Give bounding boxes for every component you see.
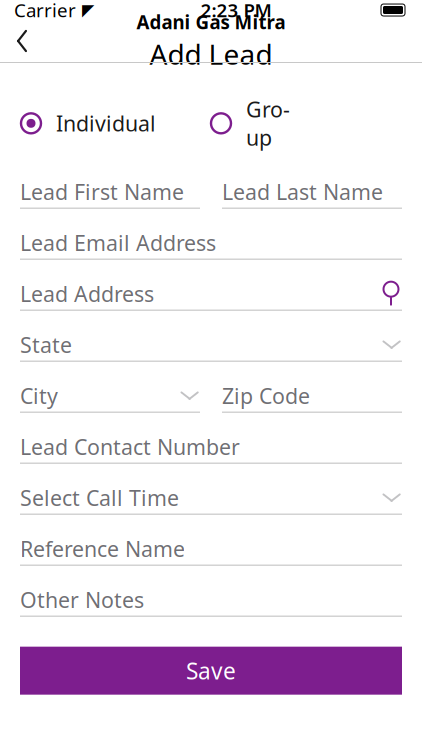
button[interactable]: Individual <box>20 103 210 143</box>
staticText: State <box>20 330 72 359</box>
staticText: Zip Code <box>222 381 310 410</box>
staticText: Lead Address <box>20 279 154 308</box>
button[interactable]: Save <box>20 647 402 695</box>
staticText: Individual <box>56 109 156 137</box>
staticText: 2:23 PM <box>200 0 271 22</box>
button[interactable]: Zip Code <box>222 380 402 413</box>
staticText: Save <box>186 656 236 686</box>
staticText: Add Lead <box>149 35 272 72</box>
staticText: Lead Contact Number <box>20 432 240 461</box>
staticText: Carrier <box>14 0 76 22</box>
button[interactable]: Lead Email Address <box>20 227 402 260</box>
staticText: Lead Last Name <box>222 177 383 206</box>
button[interactable]: Group <box>210 89 306 158</box>
staticText: Select Call Time <box>20 483 179 512</box>
button[interactable]: Reference Name <box>20 533 402 566</box>
button[interactable]: Other Notes <box>20 584 402 617</box>
staticText: Adani Gas Mitra <box>136 9 285 34</box>
staticText: Reference Name <box>20 534 185 563</box>
button[interactable]: City <box>20 380 200 413</box>
staticText: Lead First Name <box>20 177 184 206</box>
staticText: ◤ <box>82 1 94 19</box>
button[interactable]: Back <box>0 23 44 59</box>
staticText: City <box>20 381 58 410</box>
button[interactable]: State <box>20 329 402 362</box>
button[interactable]: Select Call Time <box>20 482 402 515</box>
button[interactable]: Lead Contact Number <box>20 431 402 464</box>
staticText: Lead Email Address <box>20 228 216 257</box>
staticText: Other Notes <box>20 585 144 614</box>
button[interactable]: Lead Address <box>20 278 402 311</box>
button[interactable]: Lead First Name <box>20 176 200 209</box>
button[interactable]: Lead Last Name <box>222 176 402 209</box>
staticText: Group <box>246 95 290 152</box>
